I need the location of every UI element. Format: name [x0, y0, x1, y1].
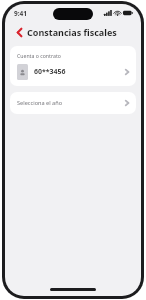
staticText: 9:41 — [14, 9, 27, 18]
staticText: 60**3456 — [34, 67, 66, 77]
staticText: Cuenta o contrato — [17, 52, 61, 59]
button[interactable]: Selecciona el año — [10, 92, 136, 114]
button[interactable]: Cuenta o contrato — [10, 46, 136, 86]
staticText: Selecciona el año — [17, 99, 63, 107]
staticText: Constancias fiscales — [27, 26, 117, 38]
button[interactable]: Back — [13, 26, 25, 38]
